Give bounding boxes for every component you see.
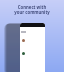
staticText: Connect with your community xyxy=(0,4,64,15)
